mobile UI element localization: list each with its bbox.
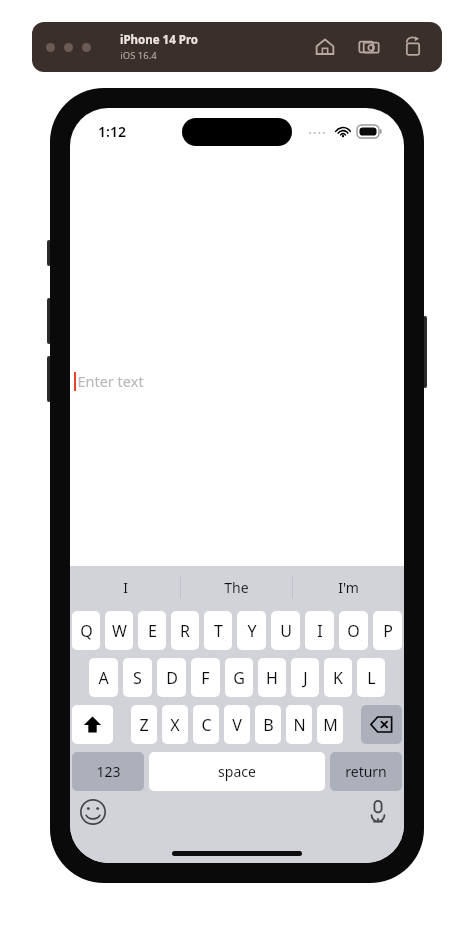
staticText: I'm — [338, 578, 359, 597]
button[interactable]: L — [357, 658, 385, 697]
button[interactable]: F — [191, 658, 220, 697]
button[interactable]: Screenshot — [358, 36, 380, 58]
staticText: R — [180, 620, 190, 642]
staticText: I — [317, 620, 323, 642]
button[interactable]: A — [89, 658, 118, 697]
button[interactable]: D — [157, 658, 186, 697]
button[interactable]: N — [286, 705, 312, 744]
button[interactable]: U — [271, 611, 300, 650]
staticText: L — [367, 667, 376, 689]
staticText: A — [98, 667, 109, 689]
button[interactable]: Z — [131, 705, 157, 744]
button[interactable]: W — [105, 611, 133, 650]
staticText: K — [333, 667, 343, 689]
staticText: 1:12 — [98, 122, 126, 141]
button[interactable]: J — [291, 658, 319, 697]
button[interactable]: K — [324, 658, 352, 697]
staticText: Q — [80, 620, 93, 642]
button[interactable]: Enter text — [70, 368, 404, 394]
button[interactable]: Emoji — [80, 799, 106, 825]
staticText: iOS 16.4 — [120, 49, 157, 62]
button[interactable]: V — [224, 705, 250, 744]
button[interactable]: Q — [72, 611, 100, 650]
staticText: G — [233, 667, 245, 689]
staticText: I — [123, 578, 128, 597]
staticText: Enter text — [77, 371, 144, 391]
button[interactable]: G — [225, 658, 253, 697]
staticText: F — [201, 667, 210, 689]
staticText: D — [166, 667, 178, 689]
button[interactable]: Shift — [72, 705, 113, 744]
button[interactable]: 123 — [72, 752, 144, 791]
button[interactable]: E — [138, 611, 166, 650]
button[interactable]: return — [330, 752, 402, 791]
staticText: X — [170, 714, 180, 736]
button[interactable] — [82, 43, 91, 52]
button[interactable]: P — [373, 611, 402, 650]
staticText: Z — [139, 714, 149, 736]
button[interactable]: O — [339, 611, 368, 650]
button[interactable]: space — [149, 752, 325, 791]
staticText: V — [232, 714, 242, 736]
button[interactable]: X — [162, 705, 188, 744]
staticText: O — [347, 620, 360, 642]
button[interactable] — [64, 43, 73, 52]
button[interactable]: Home — [314, 36, 336, 58]
staticText: P — [383, 620, 393, 642]
button[interactable]: S — [123, 658, 152, 697]
staticText: E — [148, 620, 157, 642]
staticText: B — [263, 714, 274, 736]
button[interactable]: C — [193, 705, 219, 744]
staticText: C — [201, 714, 212, 736]
staticText: S — [133, 667, 142, 689]
button[interactable]: I'm — [293, 566, 404, 608]
button[interactable]: Y — [237, 611, 266, 650]
button[interactable]: I — [305, 611, 334, 650]
staticText: U — [280, 620, 292, 642]
staticText: 123 — [96, 762, 121, 781]
button[interactable]: Dictation — [366, 799, 390, 823]
button[interactable]: H — [258, 658, 286, 697]
button[interactable]: Rotate — [402, 36, 424, 58]
button[interactable]: The — [181, 566, 292, 608]
staticText: N — [293, 714, 306, 736]
button[interactable] — [46, 43, 55, 52]
button[interactable]: R — [171, 611, 199, 650]
staticText: M — [323, 714, 338, 736]
staticText: iPhone 14 Pro — [120, 32, 198, 48]
staticText: T — [214, 620, 223, 642]
button[interactable]: I — [70, 566, 180, 608]
staticText: H — [266, 667, 278, 689]
staticText: The — [224, 578, 249, 597]
staticText: J — [303, 667, 308, 689]
button[interactable]: T — [204, 611, 232, 650]
staticText: Y — [247, 620, 257, 642]
staticText: space — [218, 762, 256, 781]
button[interactable]: M — [317, 705, 343, 744]
staticText: W — [112, 620, 127, 642]
button[interactable]: B — [255, 705, 281, 744]
staticText: return — [345, 762, 387, 781]
button[interactable]: Backspace — [361, 705, 402, 744]
